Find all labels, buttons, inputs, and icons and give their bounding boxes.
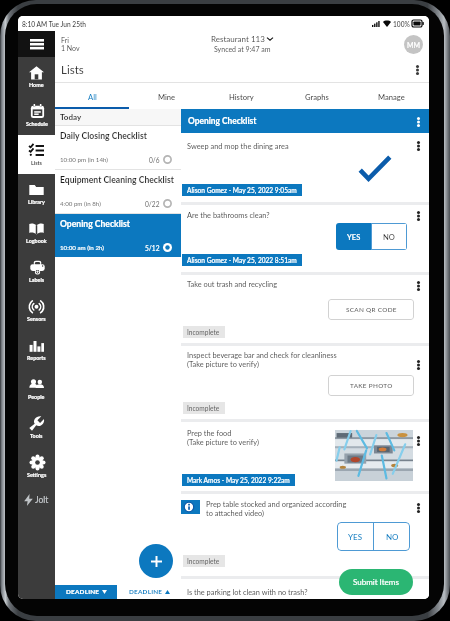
staticText: 0/6 xyxy=(149,156,160,164)
button[interactable]: Are the bathrooms clean? xyxy=(181,205,429,272)
button[interactable]: Inspect beverage bar and check for clean… xyxy=(181,346,429,419)
button[interactable]: More options xyxy=(409,62,425,78)
button[interactable]: Settings xyxy=(18,447,55,486)
button[interactable]: Menu xyxy=(18,31,55,57)
staticText: 5/12 xyxy=(145,244,160,252)
button[interactable]: Sensors xyxy=(18,291,55,330)
button[interactable]: Reports xyxy=(18,330,55,369)
staticText: to attached video) xyxy=(206,509,265,518)
staticText: 10:00 am (in 2h) xyxy=(60,244,104,251)
button[interactable]: Prep table stocked and organized accordi… xyxy=(181,494,429,576)
button[interactable]: SCAN QR CODE xyxy=(328,299,414,320)
button[interactable]: Opening Checklist xyxy=(55,214,181,257)
staticText: History xyxy=(229,92,254,101)
button[interactable]: Item options xyxy=(411,501,425,515)
button[interactable]: Daily Closing Checklist xyxy=(55,126,181,169)
button[interactable]: Item options xyxy=(411,358,425,372)
staticText: Incomplete xyxy=(187,328,220,336)
button[interactable]: Graphs xyxy=(279,83,354,109)
button[interactable]: YES xyxy=(337,522,373,551)
button[interactable]: Item options xyxy=(411,279,425,293)
staticText: Sensors xyxy=(27,316,46,322)
button[interactable]: Opening Checklist xyxy=(181,109,429,133)
staticText: Schedule xyxy=(26,121,48,127)
button[interactable]: Manage xyxy=(354,83,429,109)
button[interactable]: Home xyxy=(18,57,55,96)
staticText: Take out trash and recycling xyxy=(187,280,278,289)
button[interactable]: Submit Items xyxy=(339,569,413,595)
staticText: (Take picture to verify) xyxy=(187,360,259,369)
staticText: Sweep and mop the dining area xyxy=(187,142,289,151)
button[interactable]: Prep the food xyxy=(181,422,429,491)
button[interactable]: Restaurant 113 xyxy=(211,34,273,44)
button[interactable]: Add list xyxy=(139,544,173,578)
staticText: 0/22 xyxy=(145,200,160,208)
staticText: Prep table stocked and organized accordi… xyxy=(206,500,347,509)
staticText: Settings xyxy=(27,472,47,478)
staticText: Incomplete xyxy=(187,404,220,412)
button[interactable]: Logbook xyxy=(18,213,55,252)
staticText: Mine xyxy=(158,92,176,101)
button[interactable]: People xyxy=(18,369,55,408)
staticText: 1 Nov xyxy=(61,44,80,52)
staticText: Lists xyxy=(61,63,84,77)
staticText: Daily Closing Checklist xyxy=(60,131,147,141)
button[interactable]: NO xyxy=(374,522,410,551)
button[interactable]: Lists xyxy=(18,135,55,174)
staticText: Library xyxy=(28,199,45,205)
staticText: 4:00 pm (in 8h) xyxy=(60,200,101,207)
button[interactable]: Library xyxy=(18,174,55,213)
staticText: Graphs xyxy=(305,92,329,101)
staticText: 8:10 AM Tue Jun 25th xyxy=(22,20,87,28)
staticText: Tools xyxy=(30,433,43,439)
staticText: Incomplete xyxy=(187,557,220,565)
button[interactable]: MM xyxy=(404,35,423,54)
button[interactable]: NO xyxy=(371,223,407,250)
staticText: People xyxy=(28,394,45,400)
button[interactable]: Jolt xyxy=(18,486,55,514)
staticText: (Take picture to verify) xyxy=(187,438,259,447)
staticText: DEADLINE xyxy=(66,588,100,596)
button[interactable]: List options xyxy=(411,114,426,129)
staticText: Jolt xyxy=(35,495,49,505)
staticText: Equipment Cleaning Checklist xyxy=(60,175,174,185)
button[interactable]: DEADLINE xyxy=(117,585,181,599)
button[interactable]: All xyxy=(55,83,129,109)
staticText: Is the parking lot clean with no trash? xyxy=(187,588,308,597)
button[interactable]: TAKE PHOTO xyxy=(328,375,414,396)
button[interactable]: Item options xyxy=(411,434,425,448)
button[interactable]: History xyxy=(204,83,279,109)
staticText: Opening Checklist xyxy=(188,116,257,126)
staticText: Opening Checklist xyxy=(60,219,130,229)
button[interactable]: DEADLINE xyxy=(55,585,117,599)
staticText: Fri xyxy=(61,36,69,44)
staticText: Manage xyxy=(378,92,405,101)
staticText: TAKE PHOTO xyxy=(350,382,393,390)
staticText: 100% xyxy=(393,20,410,28)
staticText: Prep the food xyxy=(187,429,232,438)
staticText: MM xyxy=(407,41,421,49)
staticText: All xyxy=(88,92,97,101)
button[interactable]: Labels xyxy=(18,252,55,291)
button[interactable]: Sweep and mop the dining area xyxy=(181,133,429,202)
staticText: SCAN QR CODE xyxy=(346,306,397,314)
button[interactable]: Item options xyxy=(411,209,425,223)
button[interactable]: Take out trash and recycling xyxy=(181,275,429,343)
staticText: Synced at 9:47 am xyxy=(214,45,271,53)
staticText: Restaurant 113 xyxy=(211,34,265,44)
staticText: DEADLINE xyxy=(129,588,163,596)
staticText: 10:00 pm (in 14h) xyxy=(60,156,108,163)
button[interactable]: Equipment Cleaning Checklist xyxy=(55,170,181,213)
button[interactable]: Mine xyxy=(129,83,204,109)
button[interactable]: Tools xyxy=(18,408,55,447)
staticText: Alison Gomez - May 25, 2022 9:05am xyxy=(187,186,297,194)
staticText: Home xyxy=(29,82,44,88)
staticText: Reports xyxy=(27,355,46,361)
staticText: YES xyxy=(348,532,363,542)
staticText: Lists xyxy=(31,160,42,166)
button[interactable]: Schedule xyxy=(18,96,55,135)
button[interactable]: Item options xyxy=(411,139,425,153)
staticText: Submit Items xyxy=(353,577,399,587)
staticText: Are the bathrooms clean? xyxy=(187,211,270,220)
button[interactable]: YES xyxy=(336,223,371,250)
